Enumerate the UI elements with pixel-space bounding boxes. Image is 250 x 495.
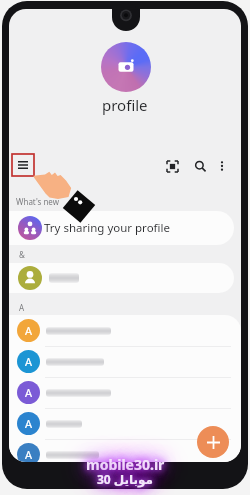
- button[interactable]: Try sharing your profile: [9, 211, 234, 245]
- staticText: What's new: [16, 196, 59, 207]
- button[interactable]: A: [9, 439, 241, 462]
- staticText: A: [25, 354, 33, 369]
- staticText: &: [19, 249, 25, 260]
- staticText: موبایل 30: [97, 471, 154, 487]
- button[interactable]: A: [9, 346, 241, 377]
- button[interactable]: [9, 263, 234, 293]
- button[interactable]: Scan QR code: [161, 155, 183, 177]
- staticText: موبایل 30: [97, 471, 154, 487]
- staticText: Try sharing your profile: [44, 220, 170, 236]
- staticText: mobile30.ir: [86, 455, 165, 474]
- staticText: A: [19, 302, 25, 313]
- button[interactable]: More options: [211, 155, 233, 177]
- button[interactable]: Navigation menu: [12, 154, 34, 176]
- staticText: mobile30.ir: [86, 455, 165, 474]
- staticText: mobile30.ir: [86, 455, 165, 474]
- staticText: A: [25, 323, 33, 338]
- staticText: موبایل 30: [97, 471, 154, 487]
- staticText: profile: [102, 95, 148, 115]
- button[interactable]: Add contact: [197, 426, 229, 458]
- staticText: A: [25, 385, 33, 400]
- staticText: A: [25, 447, 33, 462]
- staticText: A: [25, 416, 33, 431]
- button[interactable]: A: [9, 315, 241, 346]
- staticText: موبایل 30: [97, 471, 154, 487]
- button[interactable]: A: [9, 377, 241, 408]
- button[interactable]: Search: [189, 155, 211, 177]
- staticText: mobile30.ir: [86, 455, 165, 474]
- button[interactable]: A: [9, 408, 241, 439]
